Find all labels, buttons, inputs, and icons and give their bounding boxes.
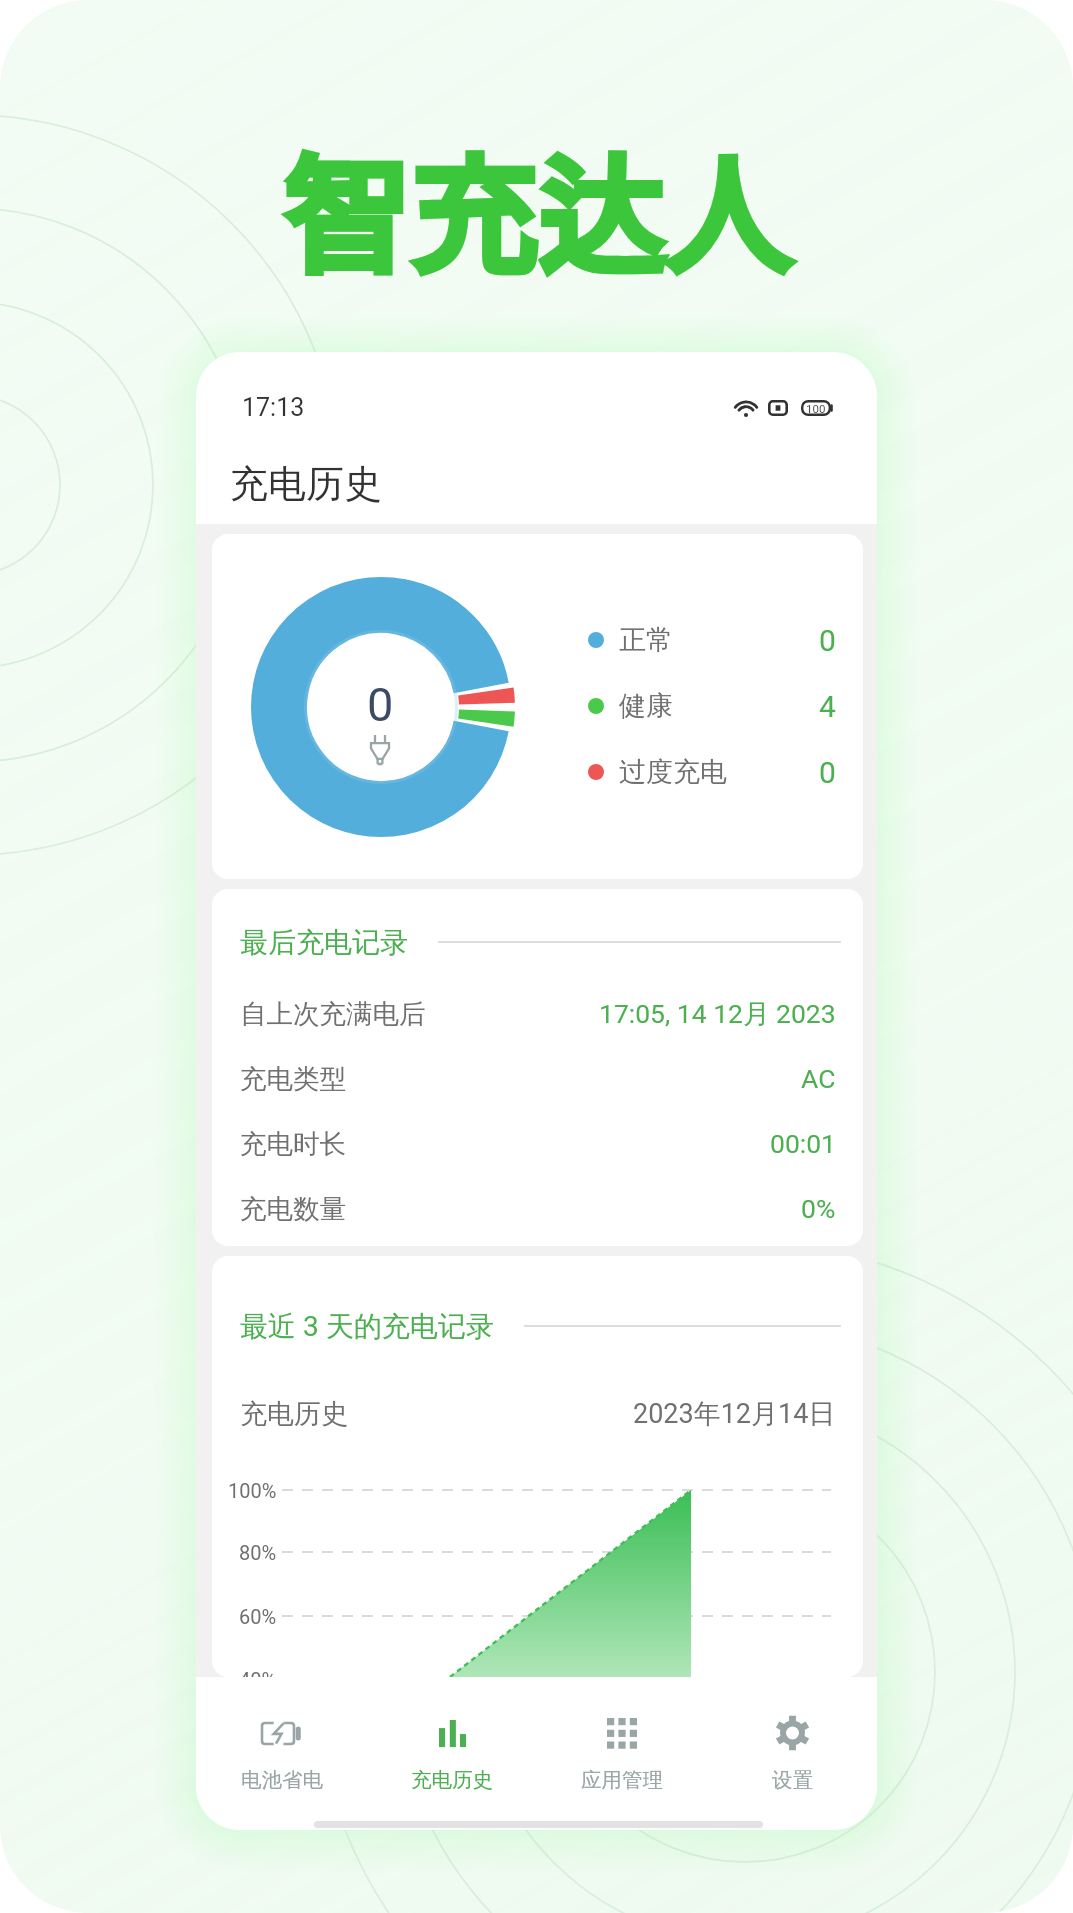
staticText: 最后充电记录: [240, 925, 408, 960]
button[interactable]: 最后充电记录: [212, 889, 863, 1246]
staticText: 过度充电: [619, 755, 727, 789]
staticText: 充电历史: [240, 1397, 348, 1431]
staticText: 60%: [239, 1605, 277, 1628]
staticText: 0: [819, 755, 836, 790]
staticText: 80%: [239, 1541, 277, 1564]
staticText: 100%: [228, 1479, 277, 1502]
staticText: AC: [801, 1063, 836, 1094]
staticText: 0%: [801, 1193, 836, 1224]
staticText: 40%: [239, 1668, 277, 1677]
staticText: 应用管理: [581, 1767, 663, 1793]
staticText: 0: [819, 623, 836, 658]
staticText: 0: [367, 677, 394, 729]
staticText: 充电数量: [240, 1192, 346, 1225]
button[interactable]: 0: [212, 534, 863, 879]
staticText: 最近 3 天的充电记录: [240, 1309, 494, 1344]
staticText: 健康: [619, 689, 673, 723]
staticText: 正常: [619, 623, 673, 657]
staticText: 17:13: [242, 393, 305, 422]
button[interactable]: 最近 3 天的充电记录: [212, 1256, 863, 1677]
staticText: 充电类型: [240, 1062, 346, 1095]
staticText: 100: [806, 402, 826, 415]
staticText: 充电时长: [240, 1127, 346, 1160]
staticText: 00:01: [770, 1128, 836, 1159]
button[interactable]: 充电历史: [367, 1705, 537, 1805]
staticText: 充电历史: [411, 1767, 493, 1793]
staticText: 设置: [772, 1767, 813, 1793]
staticText: 自上次充满电后: [240, 997, 426, 1030]
staticText: 2023年12月14日: [633, 1397, 836, 1431]
staticText: 智充达人: [282, 117, 791, 301]
staticText: 充电历史: [230, 460, 382, 508]
button[interactable]: 电池省电: [196, 1705, 367, 1805]
staticText: 4: [819, 689, 836, 724]
button[interactable]: 设置: [707, 1705, 877, 1805]
staticText: 电池省电: [241, 1767, 323, 1793]
staticText: 17:05, 14 12月 2023: [599, 997, 836, 1030]
button[interactable]: 应用管理: [537, 1705, 707, 1805]
